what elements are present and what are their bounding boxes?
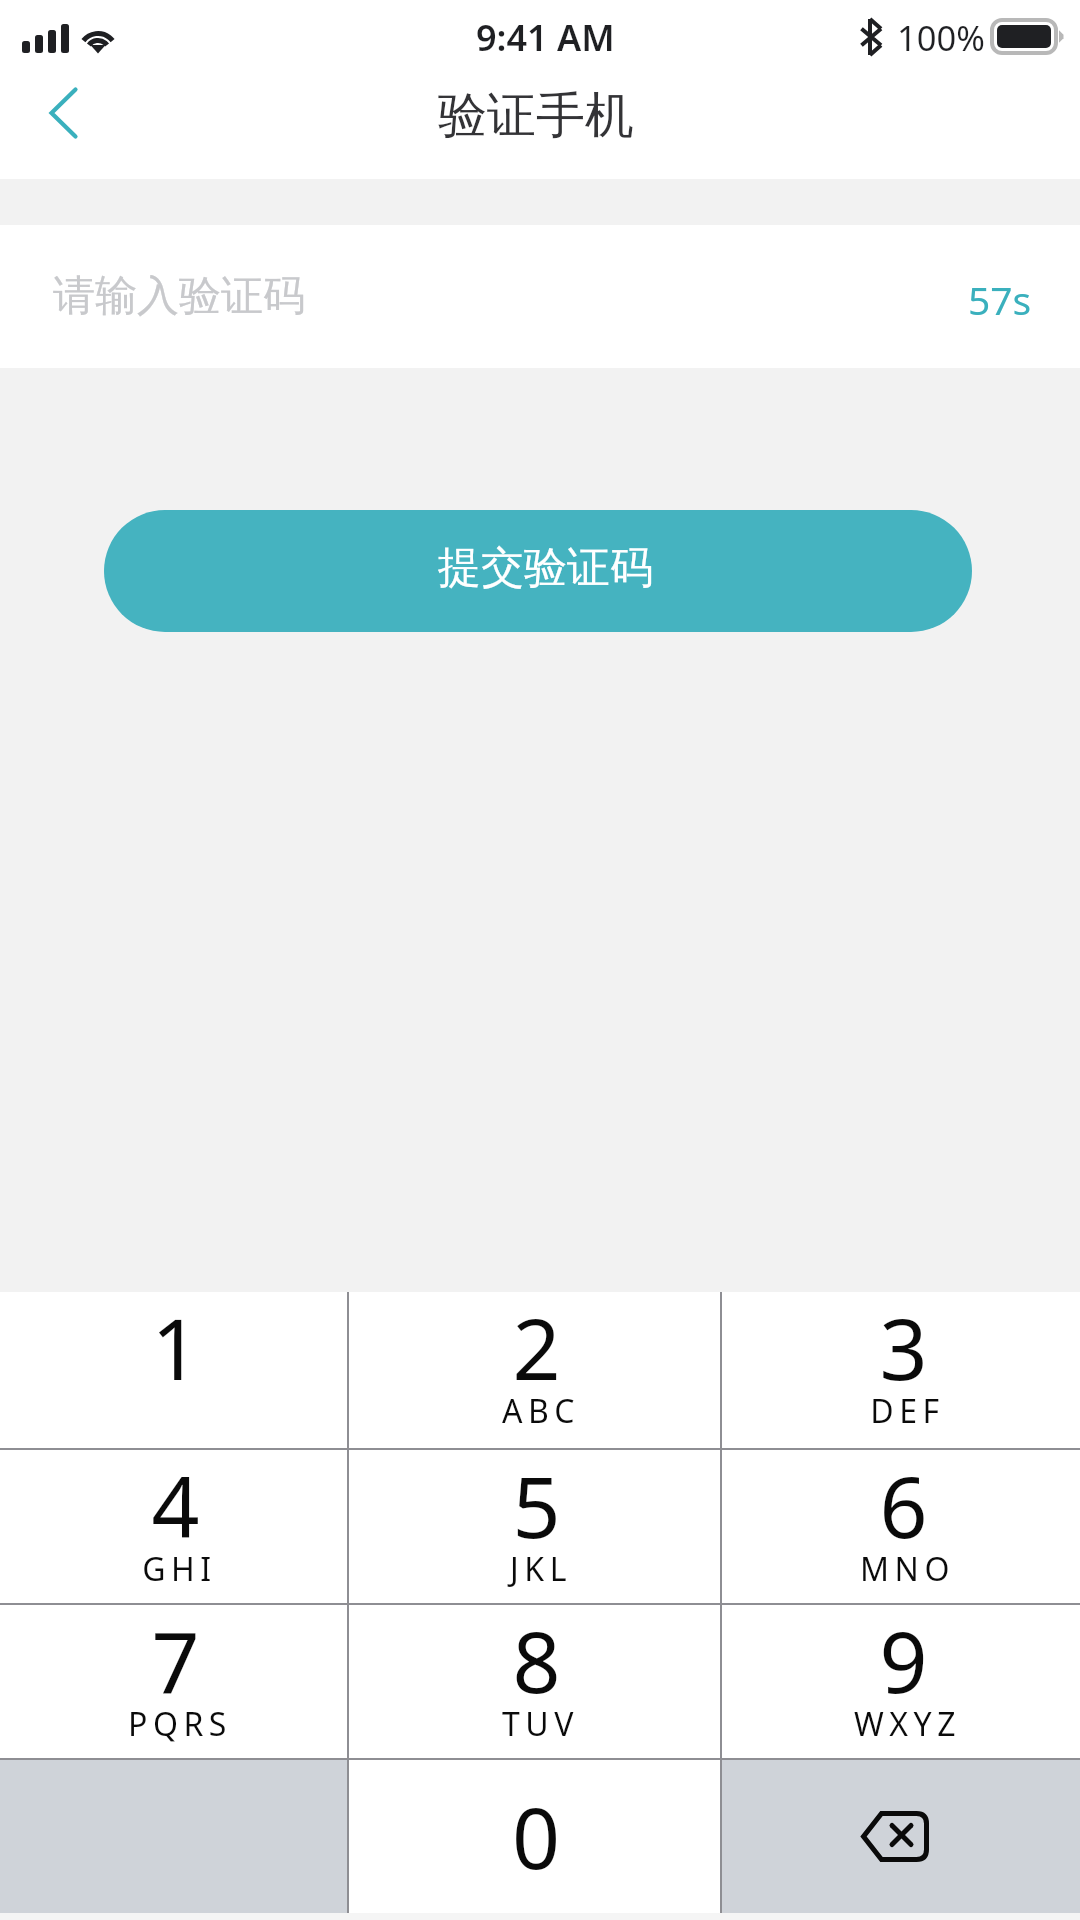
button[interactable]: 8 <box>349 1605 720 1760</box>
button[interactable]: 7 <box>0 1605 347 1760</box>
button[interactable]: 4 <box>0 1450 347 1605</box>
button[interactable]: Backspace <box>722 1760 1080 1913</box>
button[interactable]: 9 <box>722 1605 1080 1760</box>
button[interactable]: 3 <box>722 1292 1080 1450</box>
button[interactable]: 请输入验证码 <box>0 225 1080 368</box>
staticText: 7 <box>151 1603 200 1717</box>
staticText: 3 <box>879 1290 928 1404</box>
staticText: 6 <box>879 1448 928 1562</box>
staticText: 请输入验证码 <box>53 270 305 323</box>
staticText: DEF <box>870 1389 945 1433</box>
staticText: 提交验证码 <box>438 541 653 595</box>
button[interactable]: 6 <box>722 1450 1080 1605</box>
staticText: GHI <box>142 1547 217 1591</box>
staticText: 1 <box>151 1290 200 1404</box>
staticText: 100% <box>897 14 985 61</box>
staticText: 9:41 AM <box>476 13 615 62</box>
staticText: 9 <box>879 1603 928 1717</box>
staticText: 8 <box>512 1603 561 1717</box>
staticText: TUV <box>502 1702 579 1746</box>
staticText: 5 <box>512 1448 561 1562</box>
staticText: 57s <box>968 273 1032 326</box>
staticText: 0 <box>512 1779 561 1893</box>
staticText: 2 <box>512 1290 561 1404</box>
staticText: PQRS <box>128 1702 232 1746</box>
staticText: JKL <box>510 1547 572 1591</box>
button[interactable]: Back <box>14 79 114 179</box>
staticText: WXYZ <box>854 1702 961 1746</box>
button[interactable]: 1 <box>0 1292 347 1450</box>
staticText: 验证手机 <box>438 85 634 147</box>
button[interactable]: 2 <box>349 1292 720 1450</box>
staticText: 4 <box>151 1448 200 1562</box>
staticText: MNO <box>860 1547 955 1591</box>
button[interactable]: 5 <box>349 1450 720 1605</box>
button[interactable]: 提交验证码 <box>104 510 972 632</box>
button[interactable]: 0 <box>349 1760 720 1913</box>
staticText: ABC <box>502 1389 580 1433</box>
